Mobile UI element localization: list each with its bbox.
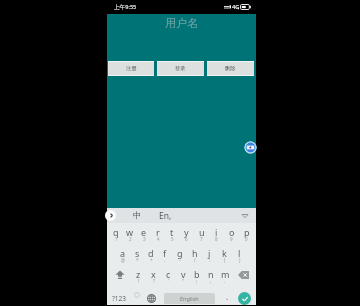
staticText: i [215, 226, 218, 238]
staticText: ) [239, 257, 241, 263]
staticText: , [210, 278, 212, 284]
button[interactable]: u [194, 223, 209, 243]
staticText: English [180, 295, 199, 302]
button[interactable]: Shift [109, 264, 131, 285]
staticText: p [244, 226, 250, 238]
button[interactable]: r [151, 223, 165, 243]
staticText: 9 [230, 236, 233, 242]
button[interactable]: 注册 [108, 61, 154, 76]
button[interactable]: m [218, 264, 232, 285]
staticText: 1 [115, 236, 118, 242]
button[interactable]: v [176, 264, 190, 285]
button[interactable]: f [158, 243, 172, 264]
button[interactable]: Assistant [244, 141, 257, 154]
button[interactable]: a [116, 243, 130, 264]
staticText: u [199, 226, 205, 238]
staticText: r [156, 226, 160, 238]
staticText: . [224, 278, 226, 284]
staticText: 4 [157, 236, 160, 242]
staticText: 2 [129, 236, 132, 242]
button[interactable]: x [146, 264, 161, 285]
button[interactable]: i [209, 223, 224, 243]
staticText: 删除 [225, 65, 236, 72]
staticText: 3 [143, 236, 146, 242]
button[interactable]: g [172, 243, 187, 264]
button[interactable]: b [190, 264, 204, 285]
staticText: d [148, 247, 154, 259]
button[interactable]: p [239, 223, 254, 243]
button[interactable]: h [187, 243, 202, 264]
staticText: b [194, 268, 200, 280]
staticText: 登录 [175, 65, 186, 72]
button[interactable]: w [123, 223, 137, 243]
button[interactable]: z [131, 264, 146, 285]
button[interactable]: q [109, 223, 123, 243]
staticText: * [136, 257, 139, 263]
staticText: 上午9:55 [114, 3, 137, 11]
staticText: m [221, 268, 230, 280]
button[interactable]: Backspace [232, 264, 254, 285]
button[interactable]: d [144, 243, 158, 264]
button[interactable]: 登录 [157, 61, 204, 76]
button[interactable]: s [130, 243, 144, 264]
staticText: l [238, 247, 241, 259]
staticText: e [141, 226, 147, 238]
button[interactable]: English [164, 293, 215, 304]
button[interactable]: 删除 [207, 61, 254, 76]
staticText: 7 [200, 236, 203, 242]
staticText: " [182, 278, 184, 284]
button[interactable]: ?123 [109, 285, 129, 306]
staticText: ? [153, 278, 155, 284]
button[interactable]: n [204, 264, 218, 285]
staticText: 0 [245, 236, 248, 242]
staticText: ( [224, 257, 226, 263]
staticText: s [135, 247, 140, 259]
button[interactable]: k [217, 243, 232, 264]
staticText: ! [138, 278, 140, 284]
button[interactable]: y [179, 223, 194, 243]
staticText: / [194, 257, 196, 263]
staticText: 5 [171, 236, 174, 242]
staticText: f [163, 247, 167, 259]
button[interactable]: e [137, 223, 151, 243]
staticText: c [166, 268, 171, 280]
staticText: h [192, 247, 198, 259]
staticText: : [209, 257, 211, 263]
staticText: @ [121, 257, 126, 263]
button[interactable]: l [232, 243, 247, 264]
staticText: a [120, 247, 126, 259]
button[interactable]: t [165, 223, 179, 243]
button[interactable]: Change keyboard language [146, 293, 157, 304]
staticText: ?123 [112, 294, 126, 303]
button[interactable]: . [221, 285, 233, 306]
button[interactable]: j [202, 243, 217, 264]
staticText: v [181, 268, 186, 280]
staticText: q [113, 226, 119, 238]
staticText: ; [196, 278, 198, 284]
staticText: n [208, 268, 214, 280]
button[interactable]: Expand toolbar [105, 210, 116, 221]
staticText: 用户名 [107, 16, 256, 30]
staticText: t [170, 226, 174, 238]
staticText: + [150, 257, 153, 263]
staticText: y [184, 226, 189, 238]
staticText: 6 [185, 236, 188, 242]
button[interactable]: Emoji [134, 292, 140, 298]
staticText: . [164, 257, 166, 263]
staticText: w [126, 226, 134, 238]
button[interactable]: c [161, 264, 176, 285]
staticText: ' [168, 278, 170, 284]
staticText: g [177, 247, 183, 259]
button[interactable]: Enter [238, 292, 251, 305]
staticText: k [222, 247, 227, 259]
staticText: 注册 [126, 65, 137, 72]
staticText: En, [159, 210, 172, 222]
staticText: 8 [215, 236, 218, 242]
button[interactable]: o [224, 223, 239, 243]
staticText: - [179, 257, 181, 263]
staticText: j [208, 247, 211, 259]
staticText: 4G [232, 3, 240, 11]
staticText: , [238, 3, 240, 11]
staticText: o [229, 226, 235, 238]
staticText: 中 [133, 210, 142, 221]
